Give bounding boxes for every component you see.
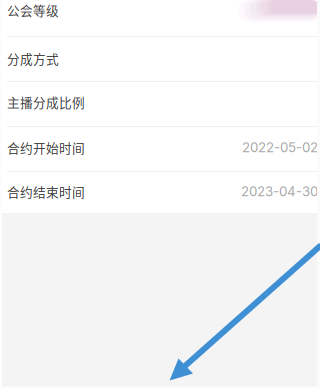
staticText: 合约开始时间	[7, 138, 85, 157]
button[interactable]: 主播分成比例	[0, 90, 320, 114]
button[interactable]: 合约开始时间	[0, 135, 320, 159]
staticText: 2023-04-30	[241, 183, 318, 199]
staticText: 分成方式	[7, 49, 59, 68]
staticText: 主播分成比例	[7, 93, 85, 111]
button[interactable]: 公会等级	[0, 0, 320, 22]
staticText: 2022-05-02	[242, 139, 318, 155]
staticText: 公会等级	[7, 1, 59, 19]
button[interactable]: 合约结束时间	[0, 179, 320, 203]
staticText: 合约结束时间	[7, 182, 85, 201]
button[interactable]: 分成方式	[0, 46, 320, 70]
